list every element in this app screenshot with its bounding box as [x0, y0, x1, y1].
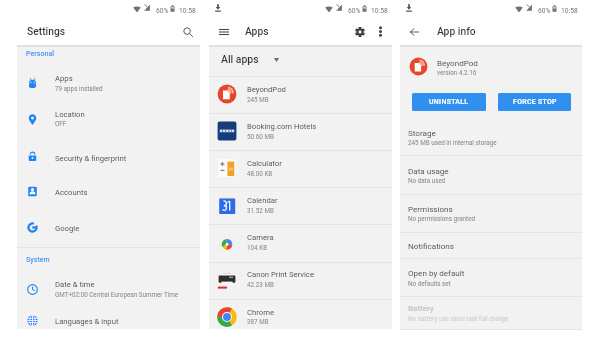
- staticText: Battery: [408, 303, 434, 312]
- staticText: FORCE STOP: [513, 98, 557, 106]
- staticText: No defaults set: [408, 280, 451, 287]
- staticText: 60%: [348, 7, 361, 15]
- staticText: Security & fingerprint: [55, 154, 127, 163]
- button[interactable]: UNINSTALL: [412, 93, 486, 111]
- button[interactable]: Menu: [215, 23, 232, 40]
- button[interactable]: [17, 102, 200, 137]
- staticText: Apps: [55, 74, 73, 83]
- button[interactable]: [17, 210, 200, 245]
- staticText: 10:58: [561, 7, 578, 15]
- staticText: BeyondPod: [437, 58, 478, 67]
- staticText: 245 MB used in internal storage: [408, 139, 497, 146]
- button[interactable]: [400, 155, 582, 194]
- staticText: GMT+02:00 Central European Summer Time: [55, 291, 179, 298]
- staticText: 42.23 MB: [247, 281, 274, 288]
- button[interactable]: [209, 77, 392, 113]
- button[interactable]: [400, 296, 582, 329]
- staticText: All apps: [221, 53, 259, 65]
- staticText: 79 apps installed: [55, 85, 103, 92]
- staticText: Calendar: [247, 196, 278, 205]
- button[interactable]: [400, 118, 582, 155]
- button[interactable]: [17, 139, 200, 174]
- staticText: Data usage: [408, 166, 449, 175]
- staticText: OFF: [55, 120, 67, 127]
- button[interactable]: [17, 303, 200, 338]
- staticText: 31.52 MB: [247, 207, 274, 214]
- staticText: 10:58: [371, 7, 388, 15]
- staticText: Apps: [245, 25, 269, 37]
- button[interactable]: [209, 151, 392, 187]
- staticText: 48.00 KB: [247, 170, 273, 177]
- staticText: Location: [55, 110, 85, 119]
- staticText: Open by default: [408, 268, 465, 277]
- button[interactable]: [400, 258, 582, 296]
- staticText: Canon Print Service: [247, 270, 314, 279]
- button[interactable]: [400, 232, 582, 259]
- button[interactable]: [17, 66, 200, 101]
- button[interactable]: Settings: [351, 23, 368, 40]
- staticText: 104 KB: [247, 244, 268, 251]
- button[interactable]: FORCE STOP: [498, 93, 571, 111]
- staticText: 387 MB: [247, 318, 269, 325]
- staticText: UNINSTALL: [429, 98, 469, 106]
- staticText: No permissions granted: [408, 215, 476, 222]
- button[interactable]: More options: [372, 23, 388, 39]
- staticText: No data used: [408, 177, 446, 184]
- staticText: Accounts: [55, 188, 88, 197]
- staticText: Camera: [247, 233, 274, 242]
- button[interactable]: Search: [179, 23, 196, 40]
- staticText: Notifications: [408, 241, 455, 250]
- button[interactable]: [17, 174, 200, 209]
- button[interactable]: Back: [406, 23, 423, 40]
- button[interactable]: [209, 225, 392, 261]
- button[interactable]: [209, 300, 392, 336]
- staticText: 60%: [538, 7, 551, 15]
- staticText: BeyondPod: [247, 85, 286, 94]
- staticText: Permissions: [408, 204, 453, 213]
- button[interactable]: [400, 194, 582, 232]
- staticText: Languages & input: [55, 317, 119, 326]
- staticText: System: [26, 255, 50, 263]
- staticText: Booking.com Hotels: [247, 122, 317, 131]
- staticText: No battery use since last full charge: [408, 315, 509, 322]
- staticText: App info: [437, 25, 476, 37]
- staticText: 10:58: [179, 7, 196, 15]
- button[interactable]: [209, 114, 392, 150]
- button[interactable]: [209, 263, 392, 299]
- staticText: 50.60 MB: [247, 133, 274, 140]
- staticText: Chrome: [247, 308, 274, 317]
- staticText: version 4.2.16: [437, 69, 477, 76]
- button[interactable]: [17, 272, 200, 307]
- staticText: Settings: [27, 25, 66, 37]
- button[interactable]: [209, 188, 392, 224]
- staticText: Date & time: [55, 280, 95, 289]
- button[interactable]: [209, 47, 392, 76]
- staticText: Personal: [26, 49, 55, 57]
- staticText: Google: [55, 224, 80, 233]
- staticText: Calculator: [247, 159, 282, 168]
- staticText: 245 MB: [247, 96, 269, 103]
- staticText: 60%: [156, 7, 169, 15]
- staticText: Storage: [408, 128, 436, 137]
